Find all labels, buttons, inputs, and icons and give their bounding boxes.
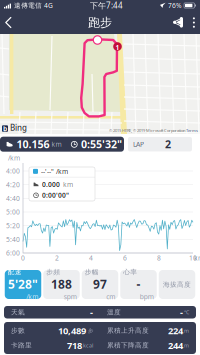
staticText: 4:40 (6, 194, 20, 203)
staticText: LAP (133, 140, 144, 149)
staticText: km (63, 180, 73, 189)
staticText: 步頻 (46, 268, 60, 276)
staticText: m (183, 342, 189, 349)
staticText: 下午7:44 (90, 0, 123, 11)
staticText: 4G (44, 1, 53, 10)
staticText: 5:40 (6, 235, 20, 244)
button[interactable]: 海拔高度 (159, 270, 195, 299)
button[interactable]: 心率 (120, 270, 157, 299)
button[interactable]: 步幅 (82, 270, 118, 299)
staticText: 0 (21, 254, 25, 262)
button[interactable]: Share (169, 11, 188, 34)
staticText: - (180, 306, 183, 318)
staticText: 步數 (11, 326, 25, 335)
staticText: Terms (186, 128, 198, 133)
staticText: 224 (168, 324, 183, 337)
staticText: 6 (123, 254, 127, 262)
staticText: 跑步 (88, 15, 112, 30)
staticText: 5:00 (6, 208, 20, 216)
staticText: 4:00 (6, 167, 20, 175)
staticText: °C (183, 309, 189, 316)
staticText: 溫度 (107, 308, 121, 316)
staticText: cm (106, 292, 115, 301)
staticText: - (90, 306, 93, 318)
staticText: --'--" /km (41, 167, 68, 176)
staticText: © 2019 HERE, © 2019 Microsoft Corporatio… (109, 128, 186, 133)
staticText: /km (8, 154, 20, 162)
staticText: 4:20 (6, 180, 20, 189)
staticText: 累積上升高度 (107, 326, 149, 335)
staticText: 心率 (123, 268, 137, 276)
staticText: 244 (168, 339, 183, 352)
staticText: m (183, 327, 189, 334)
staticText: 10,489 (58, 324, 86, 337)
staticText: 8 (157, 254, 161, 262)
button[interactable]: Back (0, 11, 17, 34)
staticText: - (136, 276, 140, 292)
staticText: 步 (86, 327, 93, 334)
staticText: 2 (165, 137, 171, 151)
staticText: /km (26, 292, 38, 301)
staticText: 76% (168, 1, 182, 10)
staticText: 0:00'00" (42, 191, 69, 200)
staticText: 188 (51, 276, 72, 292)
staticText: 97 (93, 276, 107, 292)
button[interactable]: 配速 (5, 270, 41, 299)
staticText: 0:55'32" (81, 137, 122, 151)
staticText: 步幅 (85, 268, 99, 276)
staticText: 718 (67, 339, 82, 352)
staticText: 6:00 (6, 249, 20, 257)
staticText: 配速 (8, 268, 22, 276)
staticText: 4 (89, 254, 93, 262)
staticText: 累積下降高度 (107, 341, 149, 349)
staticText: km (194, 254, 200, 262)
staticText: bpm (140, 292, 154, 301)
staticText: 海拔高度 (163, 280, 191, 289)
staticText: b (3, 124, 7, 133)
staticText: kcal (82, 342, 93, 349)
staticText: 遠傳電信 (14, 1, 42, 10)
button[interactable]: 步頻 (43, 270, 80, 299)
staticText: spm (64, 292, 77, 301)
staticText: 10 (189, 254, 197, 262)
button[interactable]: More (188, 11, 200, 34)
staticText: km (49, 140, 61, 149)
staticText: 10.156 (16, 137, 49, 151)
staticText: 卡路里 (11, 341, 32, 349)
staticText: 0.000 (42, 180, 60, 189)
staticText: Bing (8, 122, 27, 133)
staticText: 5'28" (8, 276, 38, 292)
staticText: 1 (115, 43, 119, 52)
staticText: 天氣 (11, 308, 25, 316)
staticText: 2 (55, 254, 59, 262)
staticText: 5:20 (6, 221, 20, 230)
